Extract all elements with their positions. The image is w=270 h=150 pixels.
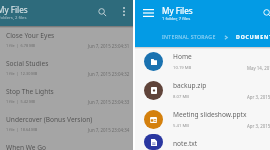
staticText: 8.07 MB [173, 94, 189, 100]
staticText: 1 file | 12.30 MB [6, 71, 38, 76]
staticText: Jun 7, 2015 23:04:33 [88, 99, 130, 105]
button[interactable]: Close Your Eyes [0, 26, 133, 54]
button[interactable]: Search [95, 5, 109, 19]
staticText: Undercover (Bonus Version) [6, 115, 93, 124]
staticText: backup.zip [173, 81, 207, 90]
staticText: Apr 3, 2015 [247, 123, 270, 129]
button[interactable]: Navigation menu [141, 6, 155, 20]
button[interactable]: When We Go [0, 138, 133, 150]
staticText: Close Your Eyes [6, 31, 55, 40]
staticText: My Files [162, 5, 193, 16]
staticText: Apr 3, 2015 [247, 94, 270, 100]
button[interactable]: Social Studies [0, 54, 133, 82]
button[interactable]: More options [117, 5, 130, 18]
button[interactable]: Stop The Lights [0, 82, 133, 110]
button[interactable]: backup.zip [135, 76, 270, 105]
staticText: Social Studies [6, 59, 49, 68]
button[interactable]: Home [135, 47, 270, 76]
staticText: 1 file | 18.64 MB [6, 127, 38, 132]
staticText: Stop The Lights [6, 87, 54, 96]
staticText: Meeting slideshow.pptx [173, 110, 247, 119]
button[interactable]: note.txt [135, 134, 270, 150]
button[interactable]: Meeting slideshow.pptx [135, 105, 270, 134]
staticText: 1 file | 5.42 MB [6, 99, 36, 104]
staticText: 5.41 MB [173, 123, 189, 129]
button[interactable]: Search [260, 6, 270, 20]
staticText: May 14, 2015 [247, 65, 270, 71]
staticText: Jun 7, 2015 23:04:31 [88, 43, 130, 49]
button[interactable]: Undercover (Bonus Version) [0, 110, 133, 138]
staticText: When We Go [6, 143, 46, 150]
staticText: folders, 2 files [0, 15, 27, 21]
staticText: 1 folder, 7 files [162, 16, 191, 22]
staticText: Jun 7, 2015 23:04:34 [88, 127, 130, 133]
staticText: Jun 7, 2015 23:04:32 [88, 71, 130, 77]
staticText: Home [173, 52, 192, 61]
staticText: My Files [0, 4, 28, 15]
staticText: 10.19 MB [173, 65, 192, 71]
staticText: 1 file | 6.78 MB [6, 43, 36, 48]
staticText: note.txt [173, 139, 198, 148]
button[interactable]: INTERNAL STORAGE [162, 33, 216, 40]
button[interactable]: DOCUMENTS [236, 33, 270, 40]
